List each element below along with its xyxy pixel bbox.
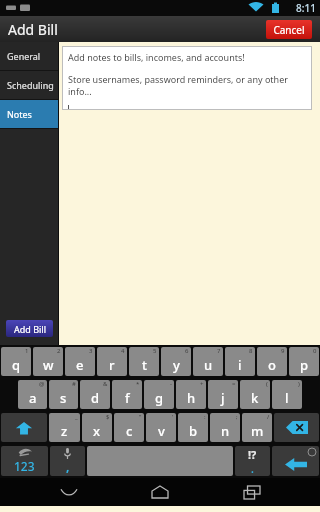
staticText: q bbox=[12, 356, 21, 374]
staticText: . bbox=[251, 462, 254, 476]
button[interactable]: Back bbox=[46, 478, 92, 506]
staticText: t bbox=[142, 356, 147, 374]
button[interactable]: & bbox=[80, 380, 110, 409]
staticText: n bbox=[221, 422, 230, 440]
button[interactable]: * bbox=[112, 380, 142, 409]
button[interactable]: ( bbox=[240, 380, 270, 409]
staticText: c bbox=[126, 422, 133, 440]
button[interactable]: 123 bbox=[1, 446, 48, 476]
staticText: Cancel bbox=[273, 23, 305, 37]
button[interactable]: : bbox=[178, 413, 208, 442]
staticText: w bbox=[43, 356, 54, 374]
button[interactable]: Backspace bbox=[274, 413, 319, 442]
staticText: ' bbox=[172, 413, 174, 421]
button[interactable]: + bbox=[176, 380, 206, 409]
staticText: 123 bbox=[14, 458, 35, 474]
button[interactable]: _ bbox=[49, 413, 80, 442]
button[interactable]: Notes bbox=[0, 100, 59, 128]
staticText: & bbox=[103, 380, 108, 388]
button[interactable]: Recent apps bbox=[229, 478, 275, 506]
staticText: = bbox=[232, 380, 236, 388]
staticText: 8 bbox=[249, 347, 253, 355]
button[interactable]: Enter bbox=[272, 446, 319, 476]
button[interactable]: 3 bbox=[65, 347, 95, 376]
staticText: Scheduling bbox=[7, 79, 54, 91]
button[interactable]: Comma and voice input bbox=[50, 446, 85, 476]
staticText: # bbox=[72, 380, 76, 388]
staticText: 7 bbox=[217, 347, 221, 355]
button[interactable]: Punctuation bbox=[235, 446, 270, 476]
button[interactable]: 1 bbox=[1, 347, 31, 376]
staticText: $ bbox=[106, 413, 110, 421]
button[interactable]: # bbox=[49, 380, 78, 409]
staticText: @ bbox=[39, 380, 45, 388]
staticText: " bbox=[139, 413, 142, 421]
button[interactable]: Add Bill bbox=[6, 320, 53, 337]
staticText: Add Bill bbox=[14, 323, 46, 335]
staticText: e bbox=[76, 356, 84, 374]
staticText: d bbox=[91, 389, 100, 407]
staticText: k bbox=[251, 389, 259, 407]
button[interactable]: $ bbox=[82, 413, 112, 442]
staticText: z bbox=[61, 422, 68, 440]
button[interactable]: ; bbox=[210, 413, 240, 442]
button[interactable]: 4 bbox=[97, 347, 127, 376]
button[interactable]: ' bbox=[146, 413, 176, 442]
button[interactable]: Cancel bbox=[266, 20, 312, 39]
staticText: 5 bbox=[153, 347, 157, 355]
staticText: : bbox=[204, 413, 206, 421]
staticText: 8:11 bbox=[296, 1, 316, 15]
staticText: !? bbox=[248, 447, 257, 462]
button[interactable]: Home bbox=[137, 478, 183, 506]
staticText: - bbox=[170, 380, 172, 388]
staticText: Add notes to bills, incomes, and account… bbox=[68, 51, 245, 63]
staticText: 0 bbox=[313, 347, 317, 355]
button[interactable]: 9 bbox=[257, 347, 287, 376]
staticText: Add Bill bbox=[8, 20, 58, 39]
staticText: , bbox=[66, 458, 70, 474]
button[interactable]: ) bbox=[272, 380, 302, 409]
button[interactable]: General bbox=[0, 42, 59, 70]
button[interactable]: 2 bbox=[33, 347, 63, 376]
staticText: j bbox=[221, 389, 225, 407]
staticText: * bbox=[136, 380, 140, 388]
staticText: 3 bbox=[89, 347, 93, 355]
staticText: / bbox=[267, 413, 270, 421]
staticText: l bbox=[285, 389, 289, 407]
button[interactable]: - bbox=[144, 380, 174, 409]
button[interactable]: Shift bbox=[1, 413, 47, 442]
button[interactable]: Scheduling bbox=[0, 71, 59, 99]
staticText: f bbox=[125, 389, 130, 407]
staticText: General bbox=[7, 50, 41, 62]
staticText: v bbox=[158, 422, 165, 440]
staticText: x bbox=[93, 422, 101, 440]
staticText: g bbox=[155, 389, 164, 407]
button[interactable]: 7 bbox=[193, 347, 223, 376]
staticText: ) bbox=[298, 380, 300, 388]
button[interactable]: 0 bbox=[289, 347, 319, 376]
staticText: Notes bbox=[7, 108, 32, 120]
staticText: s bbox=[60, 389, 67, 407]
staticText: 9 bbox=[281, 347, 285, 355]
button[interactable]: 8 bbox=[225, 347, 255, 376]
staticText: 1 bbox=[25, 347, 29, 355]
staticText: o bbox=[268, 356, 276, 374]
button[interactable]: = bbox=[208, 380, 238, 409]
staticText: ( bbox=[266, 380, 268, 388]
staticText: p bbox=[300, 356, 309, 374]
staticText: Store usernames, password reminders, or … bbox=[68, 73, 311, 97]
staticText: ; bbox=[236, 413, 238, 421]
staticText: 6 bbox=[185, 347, 189, 355]
staticText: m bbox=[251, 422, 264, 440]
button[interactable]: / bbox=[242, 413, 272, 442]
staticText: + bbox=[200, 380, 204, 388]
button[interactable]: 5 bbox=[129, 347, 159, 376]
staticText: 2 bbox=[57, 347, 61, 355]
staticText: b bbox=[189, 422, 198, 440]
staticText: r bbox=[109, 356, 115, 374]
button[interactable]: " bbox=[114, 413, 144, 442]
button[interactable]: Add notes to bills, incomes, and account… bbox=[63, 47, 311, 109]
button[interactable]: 6 bbox=[161, 347, 191, 376]
button[interactable]: @ bbox=[18, 380, 47, 409]
